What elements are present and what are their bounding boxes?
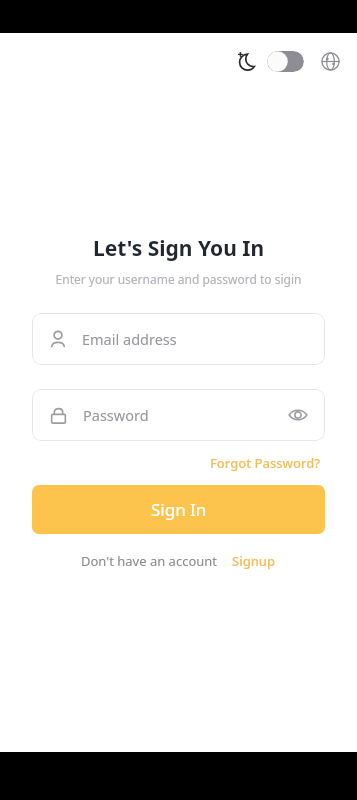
button[interactable]: Language — [316, 47, 344, 75]
button[interactable]: Show password — [285, 402, 311, 428]
staticText: Enter your username and password to sigi… — [0, 271, 357, 287]
button[interactable]: Sign In — [32, 485, 325, 534]
staticText: Sign In — [151, 498, 207, 521]
staticText: Email address — [82, 329, 177, 349]
button[interactable]: Dark mode — [233, 47, 261, 75]
button[interactable]: Forgot Password? — [206, 450, 325, 476]
button[interactable]: Password — [32, 389, 325, 441]
button[interactable]: Theme toggle — [267, 51, 304, 72]
staticText: Forgot Password? — [210, 454, 321, 472]
button[interactable]: Signup — [232, 552, 276, 570]
staticText: Don't have an account — [81, 552, 218, 570]
staticText: Let's Sign You In — [0, 234, 357, 263]
staticText: Password — [83, 405, 285, 425]
button[interactable]: Email address — [32, 313, 325, 365]
staticText: Signup — [232, 552, 276, 570]
